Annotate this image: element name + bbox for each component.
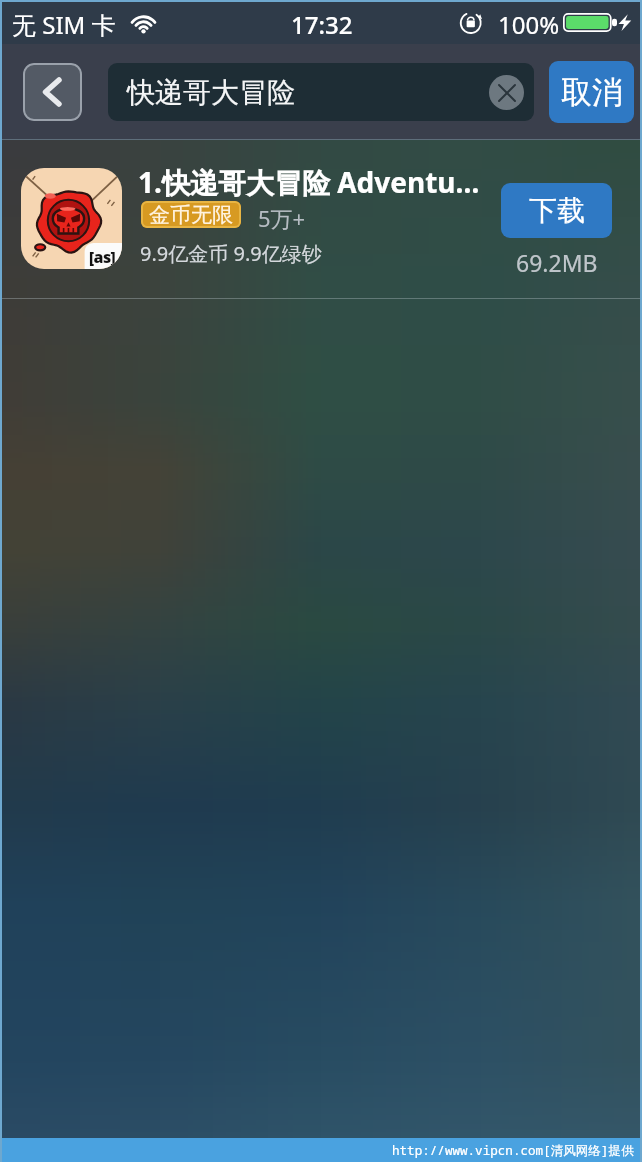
staticText: 取消 — [561, 73, 623, 112]
button[interactable]: 下载 — [501, 183, 612, 238]
staticText: 17:32 — [291, 8, 353, 41]
staticText: 5万+ — [258, 203, 306, 233]
button[interactable]: 快递哥大冒险 — [108, 63, 534, 121]
staticText: 1.快递哥大冒险 Adventu… — [138, 163, 483, 201]
staticText: 快递哥大冒险 — [127, 75, 295, 110]
staticText: 69.2MB — [516, 247, 598, 278]
staticText: 9.9亿金币 9.9亿绿钞 — [140, 240, 322, 267]
button[interactable]: Clear text — [489, 75, 524, 110]
button[interactable]: Back — [23, 63, 82, 121]
staticText: 无 SIM 卡 — [12, 8, 116, 41]
staticText: http://www.vipcn.com[清风网络]提供 — [392, 1142, 634, 1159]
staticText: [as] — [89, 246, 116, 268]
button[interactable]: [as] — [0, 140, 642, 298]
button[interactable]: 取消 — [549, 61, 634, 123]
staticText: 金币无限 — [149, 202, 233, 228]
staticText: 下载 — [529, 193, 585, 228]
staticText: 100% — [498, 8, 560, 41]
